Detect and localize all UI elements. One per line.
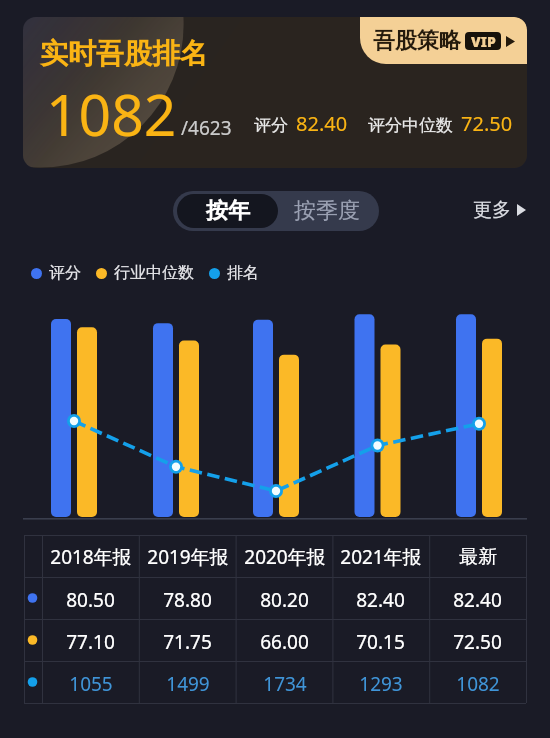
staticText: VIP xyxy=(471,32,496,50)
staticText: 2020年报 xyxy=(244,544,326,570)
staticText: 78.80 xyxy=(163,587,212,613)
staticText: 最新 xyxy=(459,545,497,569)
staticText: 2019年报 xyxy=(147,544,229,570)
staticText: 1082 xyxy=(456,671,500,697)
staticText: 排名 xyxy=(227,263,259,283)
staticText: 71.75 xyxy=(163,629,212,655)
staticText: 2021年报 xyxy=(340,544,422,570)
button[interactable]: 最新 xyxy=(429,536,526,578)
staticText: 吾股策略 xyxy=(373,27,461,55)
staticText: 评分 xyxy=(49,263,81,283)
staticText: 82.40 xyxy=(356,587,405,613)
staticText: 更多 xyxy=(473,198,511,222)
button[interactable]: 吾股策略 xyxy=(360,17,527,64)
staticText: 评分 xyxy=(254,115,288,136)
staticText: 72.50 xyxy=(461,110,513,137)
staticText: 77.10 xyxy=(66,629,115,655)
staticText: 80.50 xyxy=(66,587,115,613)
staticText: 82.40 xyxy=(453,587,502,613)
staticText: /4623 xyxy=(181,115,232,141)
staticText: 1734 xyxy=(263,671,307,697)
button[interactable]: 按年 xyxy=(177,194,278,228)
staticText: 72.50 xyxy=(453,629,502,655)
button[interactable]: 2020年报 xyxy=(236,536,333,578)
button[interactable]: 2019年报 xyxy=(139,536,236,578)
staticText: 70.15 xyxy=(356,629,405,655)
button[interactable]: 按季度 xyxy=(278,194,376,228)
staticText: 1293 xyxy=(359,671,403,697)
staticText: 评分中位数 xyxy=(368,115,453,136)
button[interactable]: 2018年报 xyxy=(42,536,139,578)
staticText: 2018年报 xyxy=(50,544,132,570)
staticText: 82.40 xyxy=(296,110,348,137)
button[interactable]: 2021年报 xyxy=(332,536,429,578)
staticText: 按年 xyxy=(206,197,250,225)
staticText: 实时吾股排名 xyxy=(40,36,208,71)
staticText: 80.20 xyxy=(260,587,309,613)
staticText: 按季度 xyxy=(294,197,360,225)
staticText: 1499 xyxy=(166,671,210,697)
staticText: 行业中位数 xyxy=(114,263,194,283)
staticText: 66.00 xyxy=(260,629,309,655)
button[interactable]: 更多 xyxy=(473,198,526,222)
staticText: 1082 xyxy=(46,75,177,153)
staticText: 1055 xyxy=(69,671,113,697)
